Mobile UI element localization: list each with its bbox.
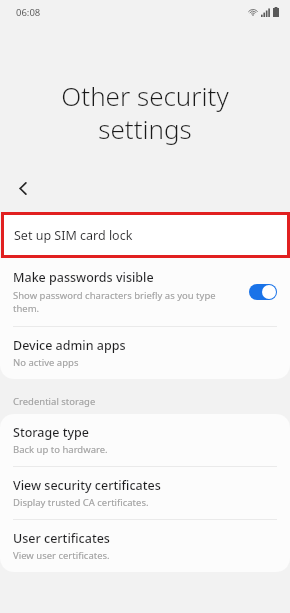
staticText: Set up SIM card lock — [14, 227, 133, 244]
button[interactable]: Make passwords visible toggle — [249, 284, 277, 300]
staticText: Credential storage — [13, 395, 96, 408]
button[interactable]: User certificates — [0, 520, 290, 572]
button[interactable]: View security certificates — [0, 467, 290, 519]
staticText: View user certificates. — [13, 549, 110, 562]
staticText: Make passwords visible — [13, 269, 154, 286]
button[interactable]: Storage type — [0, 414, 290, 466]
staticText: Other security settings — [18, 78, 272, 147]
button[interactable]: Back — [6, 171, 40, 205]
button[interactable]: Device admin apps — [0, 327, 290, 379]
staticText: No active apps — [13, 356, 79, 369]
staticText: Storage type — [13, 424, 89, 441]
staticText: View security certificates — [13, 477, 161, 494]
button[interactable]: Make passwords visible — [0, 258, 290, 326]
staticText: User certificates — [13, 530, 110, 547]
staticText: 06:08 — [16, 6, 41, 19]
staticText: Display trusted CA certificates. — [13, 496, 149, 509]
staticText: Back up to hardware. — [13, 443, 108, 456]
staticText: Show password characters briefly as you … — [13, 289, 244, 315]
button[interactable]: Set up SIM card lock — [1, 212, 290, 258]
staticText: Device admin apps — [13, 337, 126, 354]
